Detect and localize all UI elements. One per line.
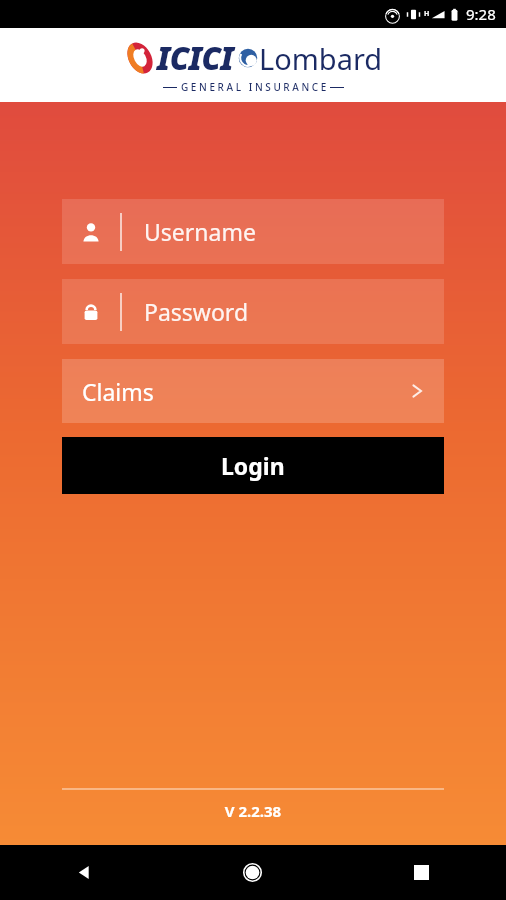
button[interactable]: Recent apps [337,845,506,900]
staticText: Claims [82,376,154,407]
staticText: Password [144,296,249,327]
button[interactable]: Home [168,845,337,900]
staticText: GENERAL INSURANCE [181,80,329,94]
staticText: ICICI [157,37,234,79]
button[interactable]: Password [62,279,444,344]
button[interactable]: Back [0,845,168,900]
staticText: Lombard [259,39,383,78]
staticText: Login [221,450,285,481]
button[interactable]: Login [62,437,444,494]
staticText: H [424,9,430,19]
button[interactable]: Claims [62,359,444,423]
staticText: 9:28 [466,4,496,24]
staticText: V 2.2.38 [0,801,506,821]
staticText: Username [144,216,256,247]
button[interactable]: Username [62,199,444,264]
